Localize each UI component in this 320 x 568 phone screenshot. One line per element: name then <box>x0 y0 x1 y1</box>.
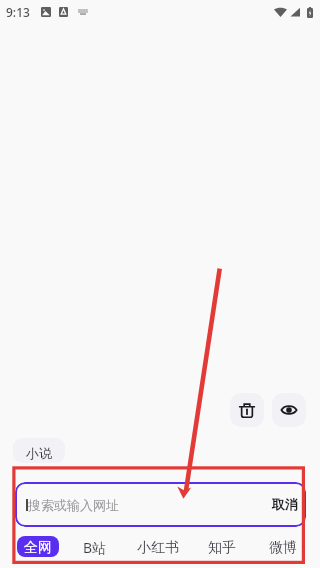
staticText: 取消 <box>272 496 298 512</box>
button[interactable]: 搜索或输入网址 <box>15 482 306 527</box>
button[interactable]: 小说 <box>13 438 65 463</box>
staticText: 9:13 <box>6 4 30 20</box>
button[interactable]: B站 <box>78 536 112 557</box>
button[interactable]: 知乎 <box>203 536 241 557</box>
staticText: 微博 <box>269 539 297 557</box>
button[interactable]: Preview <box>272 393 306 427</box>
staticText: 全网 <box>24 539 52 557</box>
button[interactable]: 小红书 <box>132 536 184 557</box>
staticText: 小红书 <box>137 539 179 557</box>
staticText: 小说 <box>26 445 52 461</box>
staticText: 知乎 <box>208 539 236 557</box>
staticText: B站 <box>83 538 107 557</box>
staticText: 搜索或输入网址 <box>28 497 119 513</box>
button[interactable]: 微博 <box>264 536 302 557</box>
button[interactable]: 全网 <box>17 536 59 557</box>
button[interactable]: Delete <box>230 393 264 427</box>
